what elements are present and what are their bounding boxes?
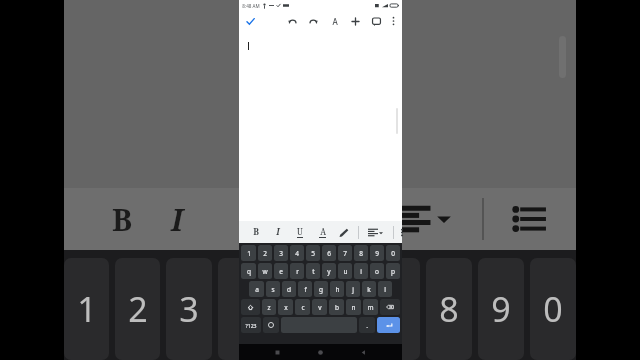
staticText: 0 [391,249,395,258]
button[interactable]: u [338,263,352,279]
staticText: x [284,303,288,312]
staticText: 0 [543,286,563,332]
button[interactable]: i [354,263,368,279]
button[interactable]: 9 [370,245,384,261]
staticText: p [391,267,395,276]
staticText: 3 [179,286,199,332]
staticText: y [327,267,331,276]
staticText: A [320,226,326,237]
staticText: 3 [279,249,283,258]
button[interactable]: m [363,299,378,315]
button[interactable]: b [329,299,344,315]
button[interactable]: U [294,226,306,238]
button[interactable]: f [298,281,312,297]
button[interactable]: j [346,281,360,297]
button[interactable]: y [322,263,336,279]
button[interactable]: d [282,281,296,297]
button[interactable]: . [359,317,375,333]
staticText: 8:48 AM [242,3,260,9]
button[interactable]: Backspace [380,299,400,315]
staticText: f [304,285,307,294]
staticText: r [296,267,299,276]
staticText: h [335,285,340,294]
button[interactable]: g [314,281,328,297]
button[interactable]: w [258,263,272,279]
button[interactable]: p [386,263,400,279]
button[interactable]: I [272,226,284,238]
button[interactable]: 3 [274,245,288,261]
button[interactable]: ?123 [241,317,261,333]
button[interactable]: h [330,281,344,297]
button[interactable]: Recent apps [273,348,282,357]
staticText: e [279,267,283,276]
button[interactable]: Alignment [368,228,384,237]
button[interactable]: Enter [377,317,400,333]
button[interactable]: 0 [386,245,400,261]
button[interactable]: Format [329,16,340,27]
button[interactable]: q [241,263,256,279]
button[interactable]: Insert [350,16,361,27]
button[interactable]: x [278,299,293,315]
button[interactable]: Emoji [263,317,279,333]
staticText: q [247,267,251,276]
button[interactable]: Home [316,348,325,357]
button[interactable]: Shift [241,299,260,315]
button[interactable]: z [262,299,276,315]
staticText: z [267,303,271,312]
staticText: 2 [128,286,148,332]
staticText: l [384,285,386,294]
staticText: 4 [295,249,299,258]
button[interactable]: Highlight [338,227,349,238]
staticText: 5 [311,249,315,258]
staticText: 9 [491,286,511,332]
button[interactable]: t [306,263,320,279]
staticText: g [319,285,323,294]
staticText: 7 [343,249,347,258]
button[interactable]: a [249,281,264,297]
staticText: t [312,267,315,276]
button[interactable]: Back [359,348,368,357]
staticText: U [297,226,303,237]
button[interactable]: More options [390,15,397,27]
staticText: j [352,285,354,294]
staticText: k [367,285,371,294]
button[interactable]: B [250,226,262,238]
button[interactable]: 4 [290,245,304,261]
button[interactable]: v [312,299,327,315]
button[interactable]: 1 [241,245,256,261]
button[interactable]: l [378,281,392,297]
staticText: 6 [327,249,331,258]
staticText: u [343,267,348,276]
button[interactable]: r [290,263,304,279]
staticText: B [253,226,259,238]
button[interactable]: c [295,299,310,315]
staticText: 8 [359,249,363,258]
staticText: c [301,303,305,312]
button[interactable]: Comment [371,16,382,27]
button[interactable]: e [274,263,288,279]
button[interactable]: n [346,299,361,315]
button[interactable]: k [362,281,376,297]
staticText: o [375,267,379,276]
button[interactable]: 7 [338,245,352,261]
button[interactable]: Done [245,16,256,27]
staticText: 2 [263,249,267,258]
button[interactable]: 6 [322,245,336,261]
staticText: a [255,285,259,294]
staticText: 1 [247,249,251,258]
button[interactable]: A [316,226,328,238]
staticText: w [262,267,268,276]
staticText: 1 [77,286,97,332]
button[interactable]: s [266,281,280,297]
button[interactable]: 2 [258,245,272,261]
button[interactable]: 5 [306,245,320,261]
button[interactable]: Redo [308,16,319,27]
staticText: b [335,303,339,312]
staticText: I [162,199,192,240]
staticText: v [318,303,322,312]
staticText: m [367,303,374,312]
button[interactable]: 8 [354,245,368,261]
button[interactable]: Undo [287,16,298,27]
button[interactable]: o [370,263,384,279]
